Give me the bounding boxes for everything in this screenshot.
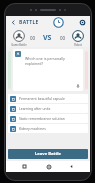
- button[interactable]: Settings: [78, 18, 87, 27]
- staticText: 00: [60, 35, 66, 41]
- staticText: BATTLE: [19, 19, 39, 26]
- staticText: Robot: [74, 43, 82, 47]
- staticText: Which one is personally explained?: [25, 56, 79, 66]
- button[interactable]: Permanent beautiful capsule: [8, 94, 88, 103]
- staticText: Leave Battle: [35, 151, 62, 157]
- button[interactable]: Learning after units: [8, 104, 88, 113]
- button[interactable]: Timer: [53, 17, 64, 28]
- button[interactable]: Static remembrance solution: [8, 114, 88, 123]
- button[interactable]: Robot: [69, 30, 86, 47]
- staticText: Kidney machines: [19, 126, 46, 131]
- button[interactable]: Game Battle: [10, 30, 27, 47]
- staticText: VS: [43, 33, 52, 43]
- button[interactable]: Kidney machines: [8, 124, 88, 133]
- button[interactable]: Home: [44, 162, 53, 171]
- staticText: 00: [30, 35, 36, 41]
- button[interactable]: Back: [67, 162, 76, 171]
- button[interactable]: Back: [9, 18, 18, 27]
- staticText: Permanent beautiful capsule: [19, 96, 65, 101]
- staticText: Static remembrance solution: [19, 116, 65, 121]
- button[interactable]: Record voice: [75, 83, 81, 89]
- button[interactable]: Leave Battle: [8, 149, 88, 159]
- button[interactable]: Recent apps: [20, 162, 29, 171]
- staticText: Game Battle: [11, 43, 27, 47]
- staticText: Learning after units: [19, 106, 51, 111]
